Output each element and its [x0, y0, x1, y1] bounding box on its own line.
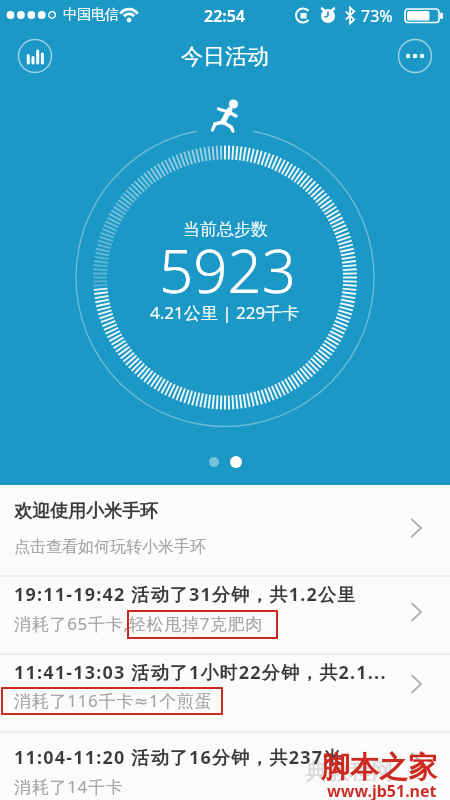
button[interactable]: 11:41-13:03 活动了1小时22分钟，共2.1... — [0, 654, 450, 732]
button[interactable] — [18, 39, 52, 73]
staticText: 消耗了14千卡 — [14, 775, 124, 798]
staticText: 点击查看如何玩转小米手环 — [14, 537, 206, 557]
staticText: 今日活动 — [181, 43, 269, 71]
staticText: 典教程网 — [305, 758, 393, 786]
staticText: 消耗了116千卡≈1个煎蛋 — [14, 689, 213, 712]
button[interactable]: 欢迎使用小米手环 — [0, 485, 450, 576]
button[interactable]: 19:11-19:42 活动了31分钟，共1.2公里 — [0, 576, 450, 654]
staticText: 11:41-13:03 活动了1小时22分钟，共2.1... — [14, 660, 387, 685]
staticText: 脚本之家 — [321, 749, 437, 786]
staticText: 19:11-19:42 活动了31分钟，共1.2公里 — [14, 582, 357, 607]
staticText: 11:04-11:20 活动了16分钟，共237米 — [14, 745, 343, 770]
staticText: 73% — [361, 5, 393, 27]
button[interactable] — [398, 39, 432, 73]
staticText: 中国电信 — [63, 6, 119, 24]
staticText: 当前总步数 — [183, 219, 268, 240]
staticText: 4.21公里 | 229千卡 — [150, 301, 300, 324]
button[interactable]: 11:04-11:20 活动了16分钟，共237米 — [0, 732, 450, 800]
staticText: 欢迎使用小米手环 — [14, 500, 158, 523]
staticText: 22:54 — [204, 5, 246, 27]
staticText: www.jb51.net — [327, 780, 437, 800]
staticText: 消耗了65千卡,轻松甩掉7克肥肉 — [14, 612, 264, 635]
staticText: 5923 — [159, 229, 297, 311]
